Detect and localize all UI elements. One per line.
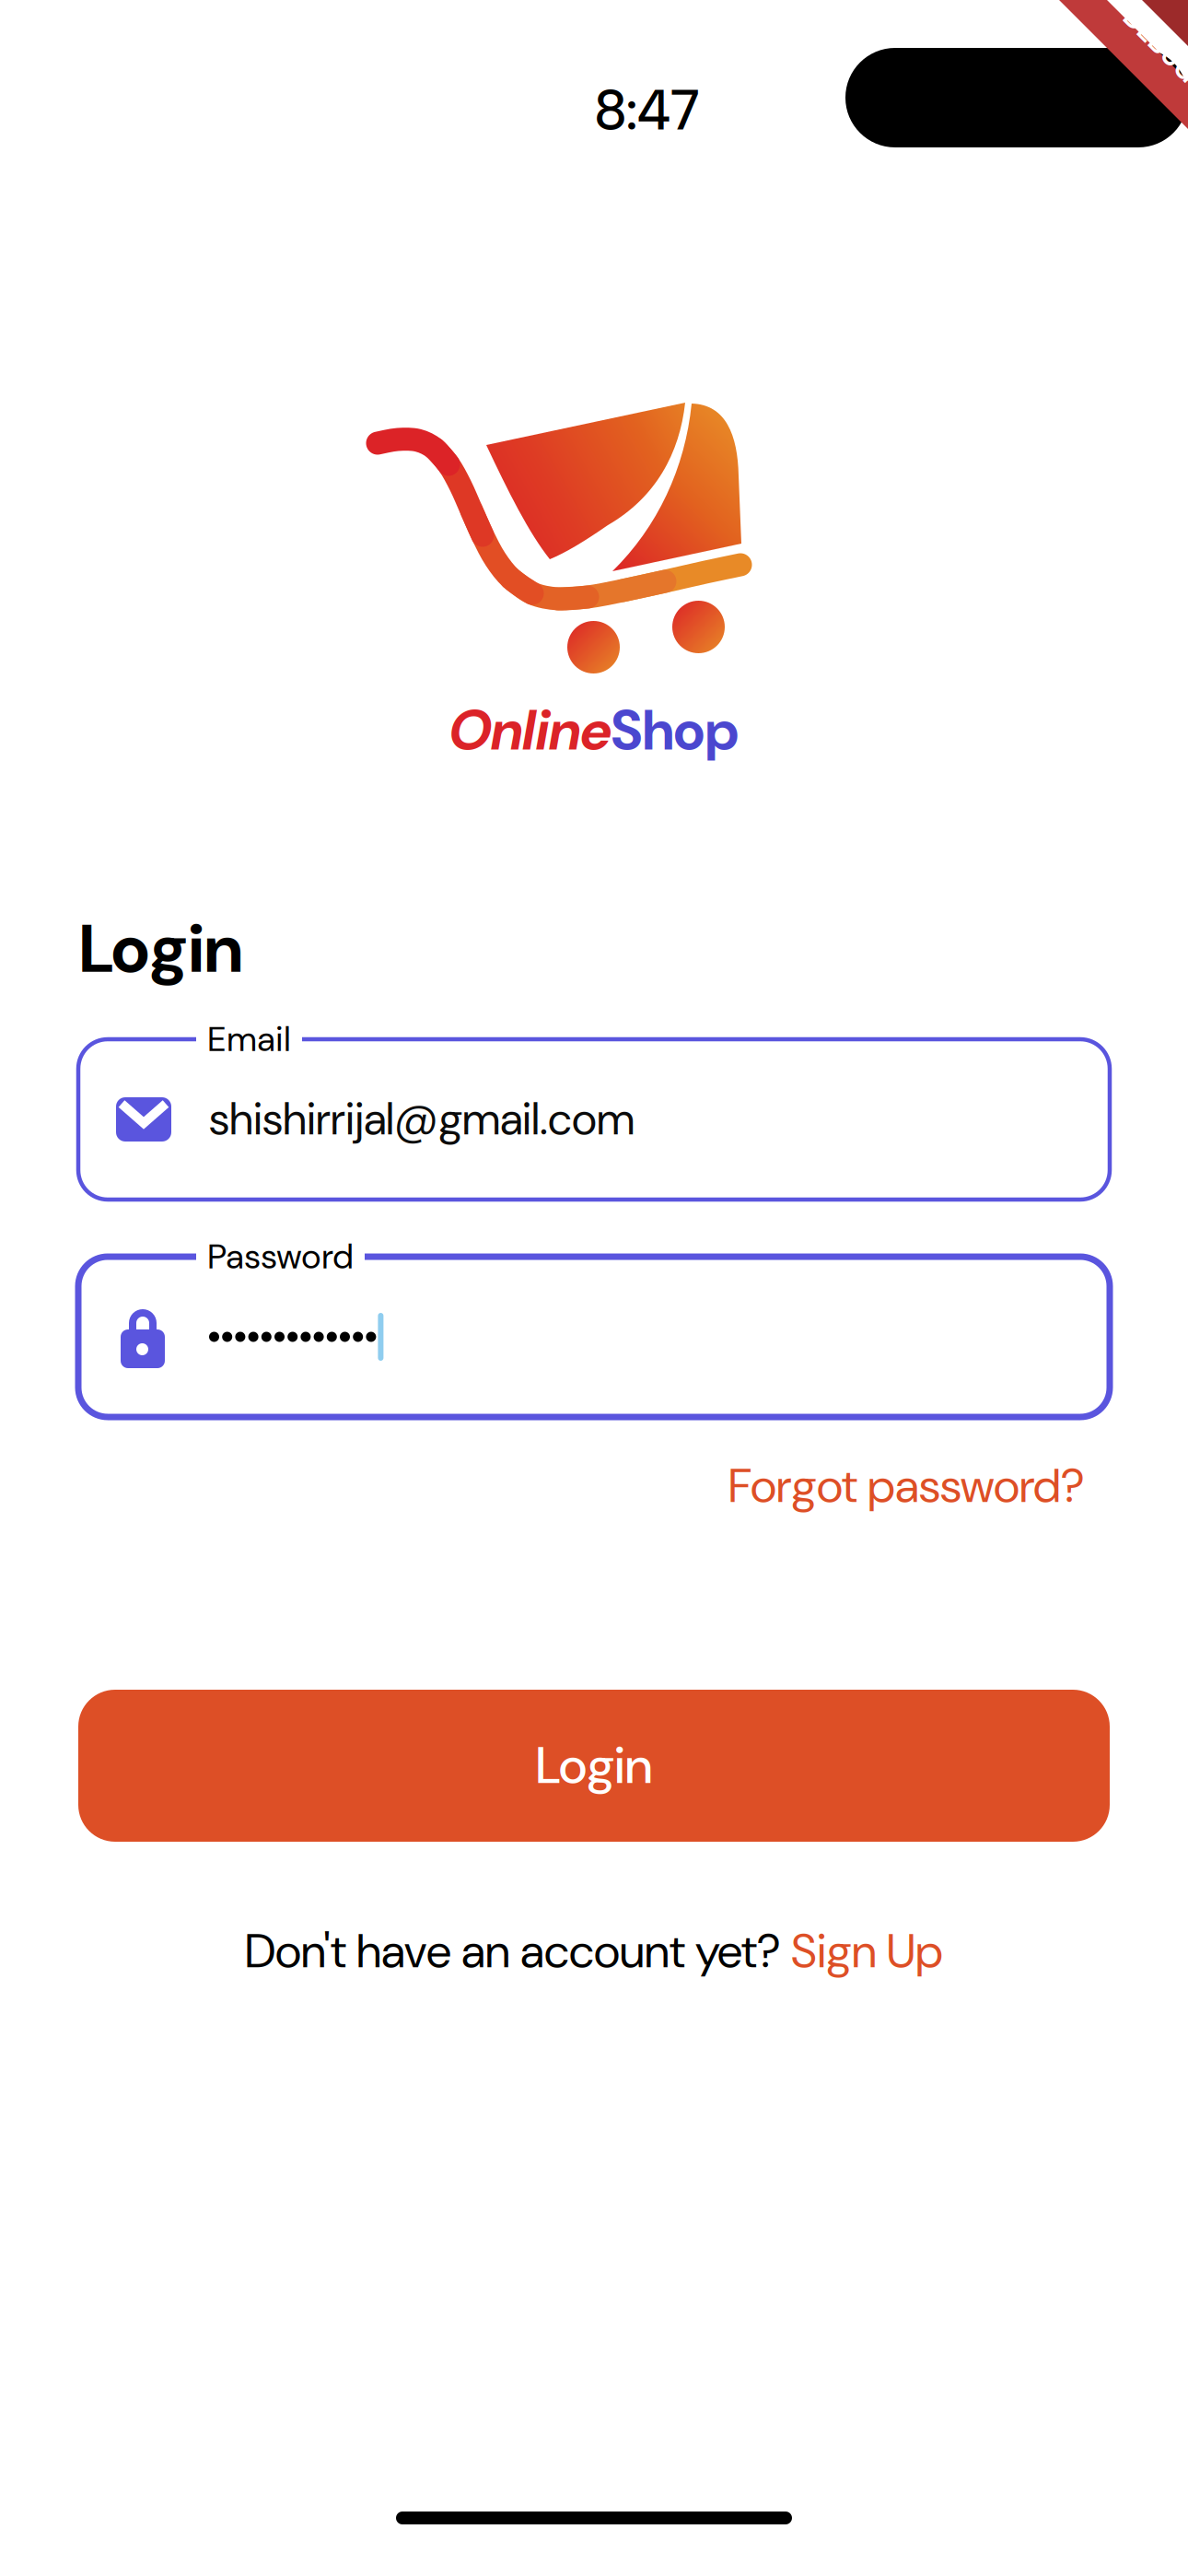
staticText: Forgot password? [728, 1456, 1085, 1516]
staticText: Email [207, 1017, 291, 1062]
staticText: Don't have an account yet? [245, 1921, 791, 1982]
staticText: 8:47 [595, 75, 699, 147]
staticText: shishirrijal@gmail.com [209, 1091, 635, 1148]
staticText: Shop [611, 695, 739, 767]
staticText: Sign Up [791, 1921, 943, 1982]
staticText: Online [449, 695, 611, 767]
button[interactable]: Sign Up [791, 1921, 943, 1982]
button[interactable]: Forgot password? [78, 1456, 1085, 1516]
button[interactable]: Login [78, 1690, 1110, 1842]
staticText: Login [79, 905, 243, 993]
staticText: Password [207, 1234, 354, 1279]
staticText: DEBUG [1114, 28, 1188, 63]
staticText: Login [536, 1733, 652, 1799]
